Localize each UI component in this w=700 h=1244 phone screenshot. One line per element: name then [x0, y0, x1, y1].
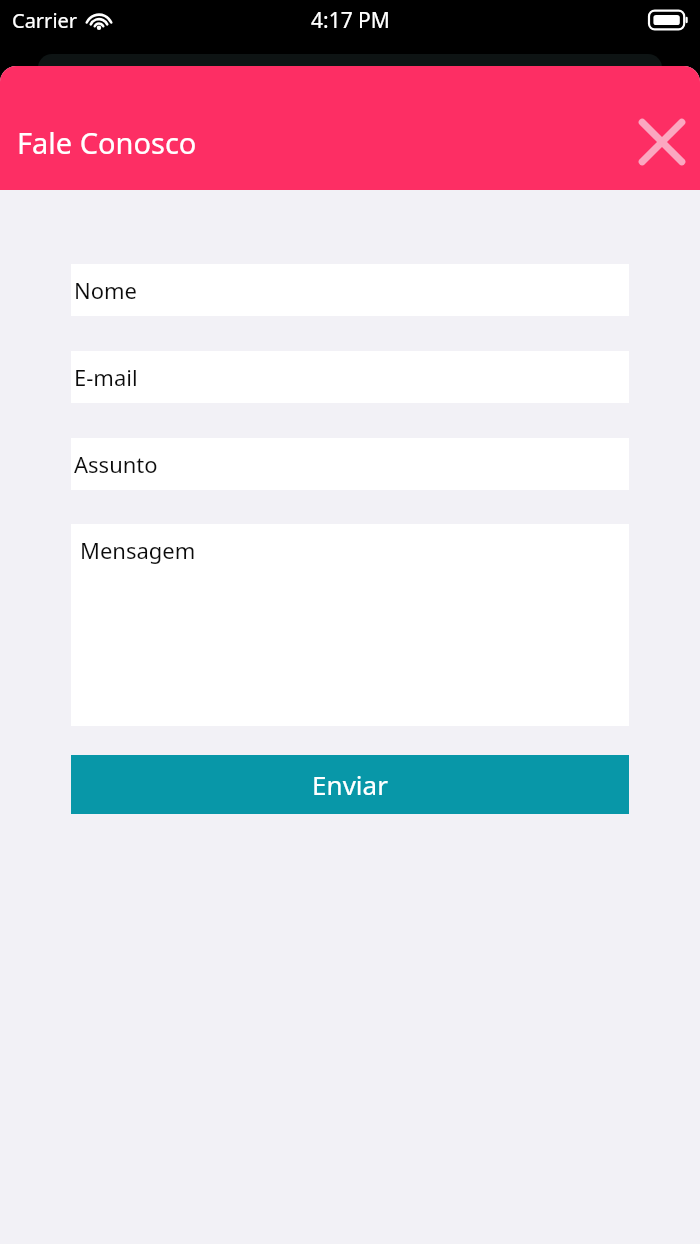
button[interactable]: Mensagem [71, 524, 629, 726]
staticText: Enviar [312, 767, 388, 802]
button[interactable]: E-mail [71, 351, 629, 403]
staticText: 4:17 PM [311, 6, 390, 35]
button[interactable]: Enviar [71, 755, 629, 814]
staticText: Mensagem [80, 535, 196, 565]
staticText: Fale Conosco [17, 123, 197, 162]
staticText: E-mail [74, 362, 138, 392]
staticText: Assunto [74, 449, 158, 479]
staticText: Carrier [12, 7, 78, 34]
button[interactable]: Close [628, 108, 696, 176]
button[interactable]: Nome [71, 264, 629, 316]
staticText: Nome [74, 275, 138, 305]
button[interactable]: Assunto [71, 438, 629, 490]
